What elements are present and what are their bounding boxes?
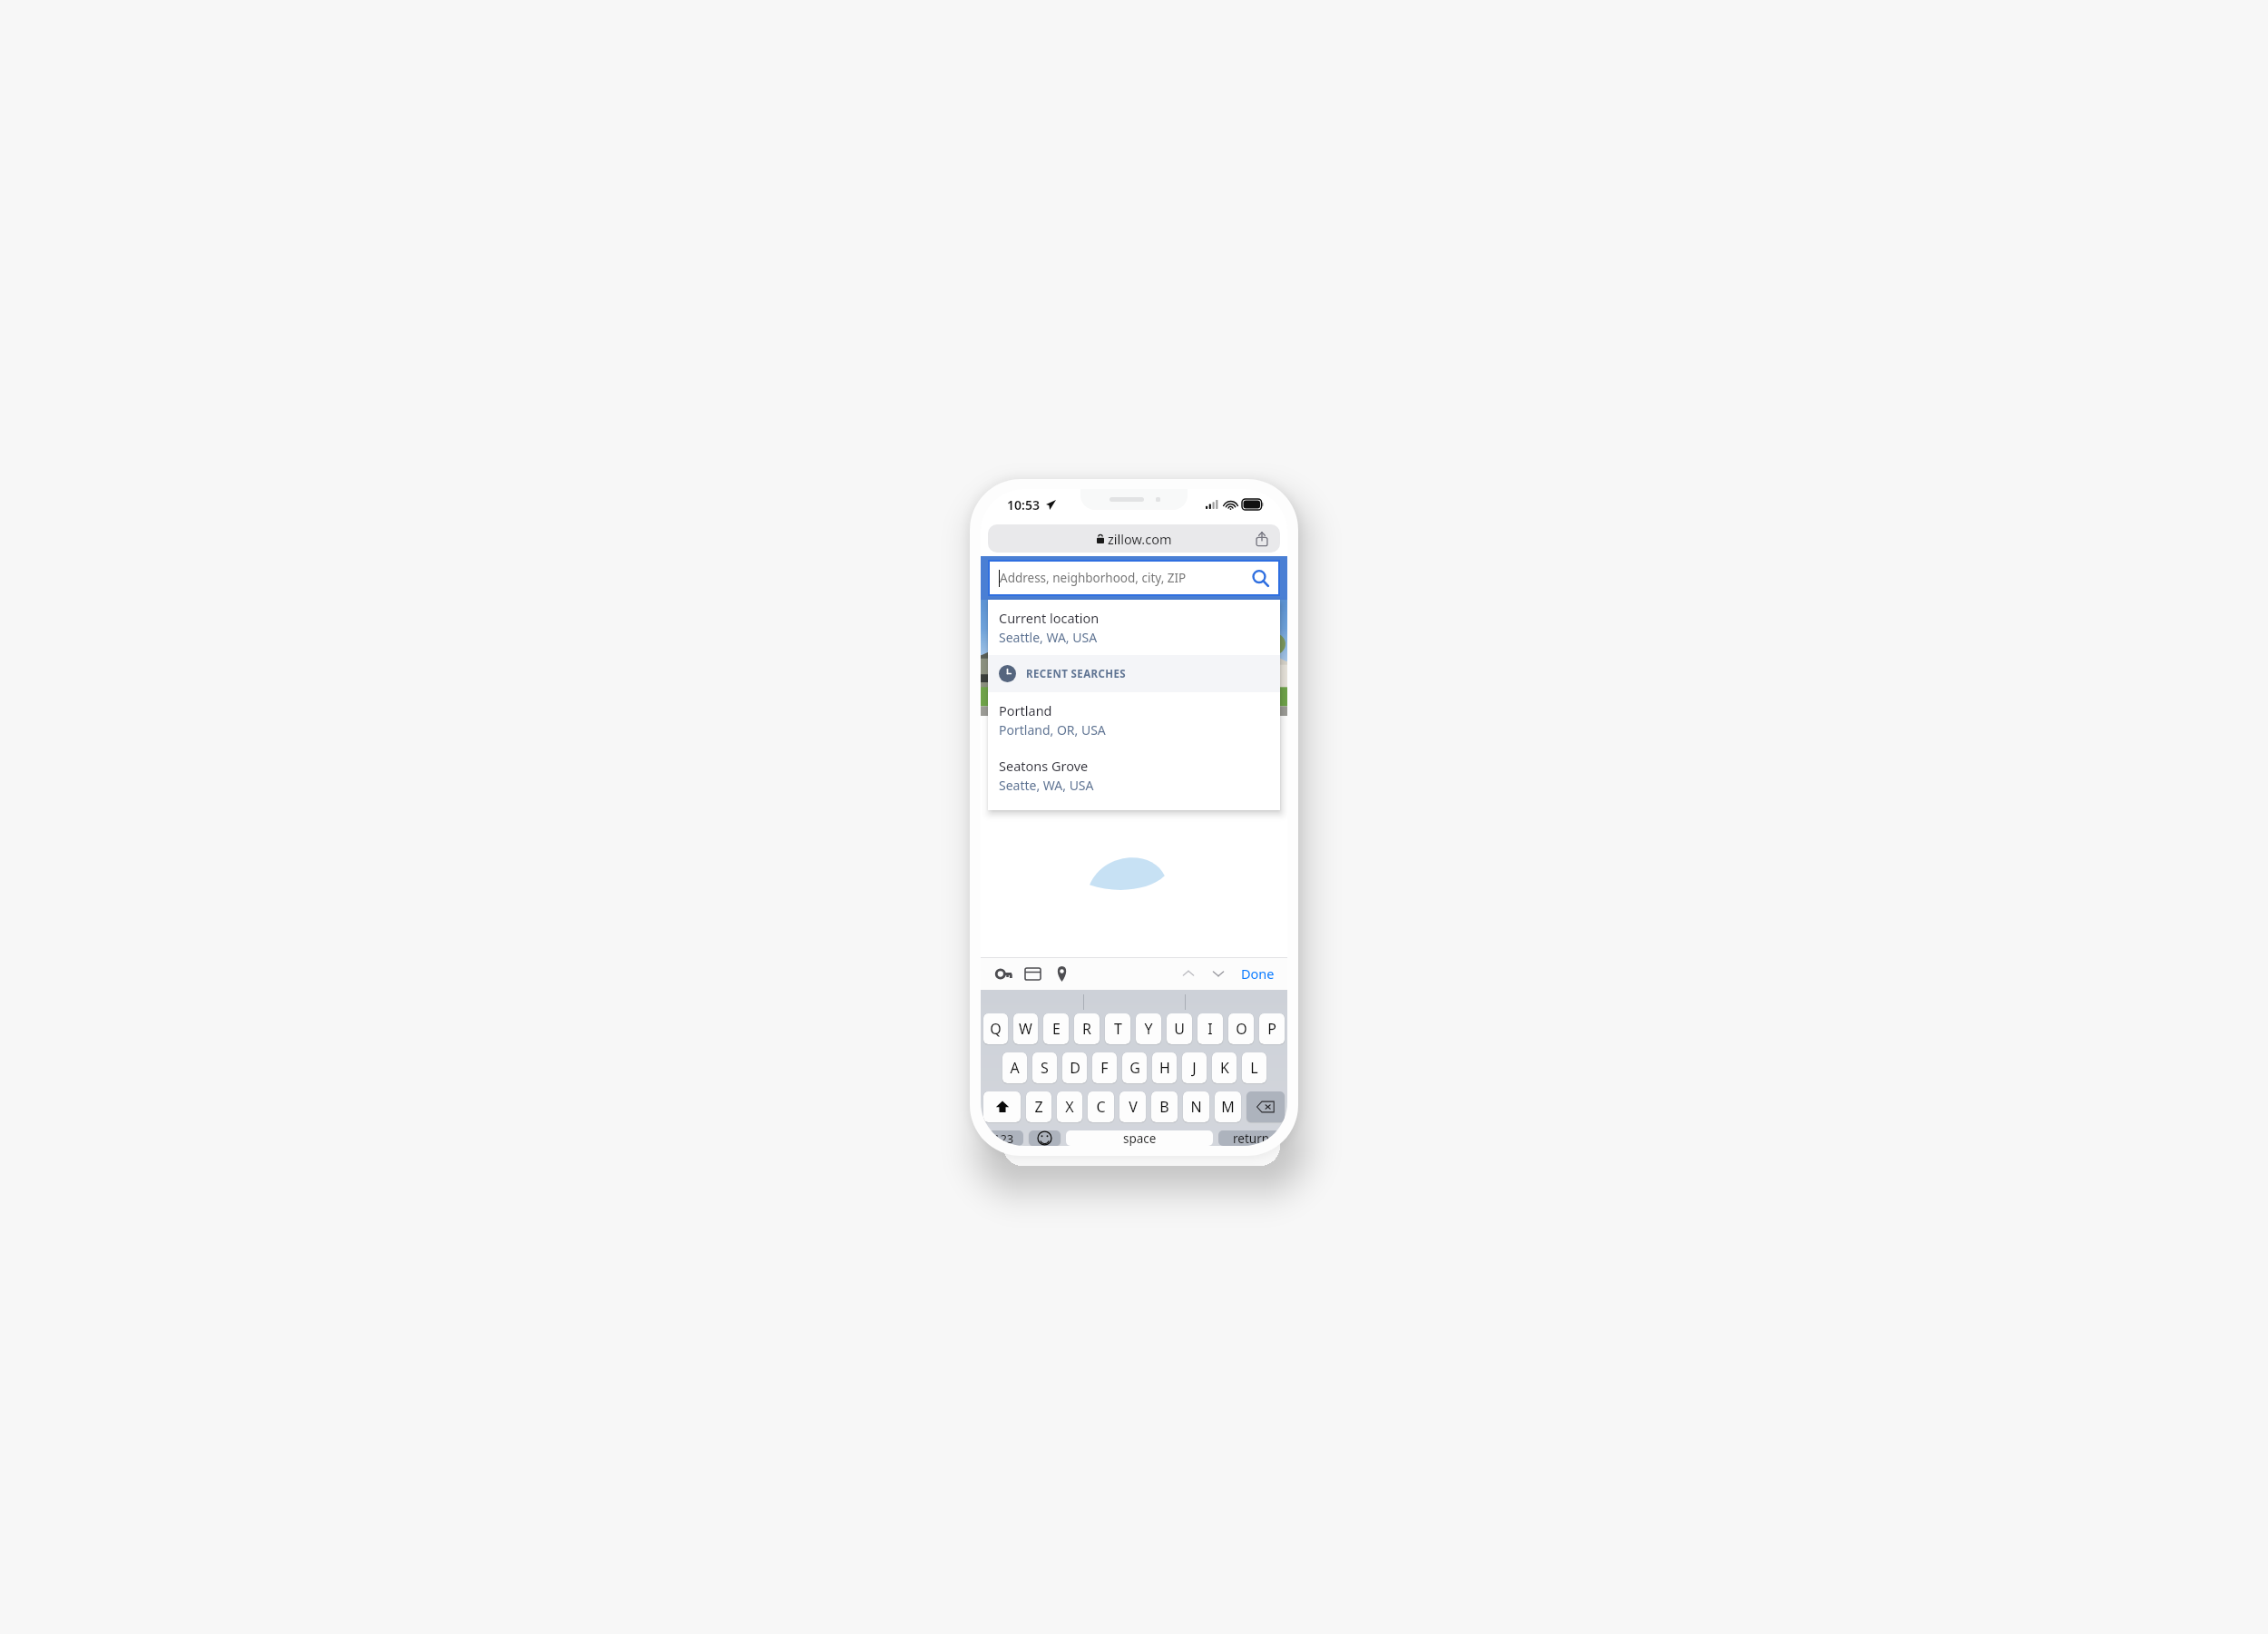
staticText: I — [1207, 1019, 1213, 1039]
staticText: W — [1019, 1019, 1032, 1039]
button[interactable]: A — [1002, 1052, 1027, 1083]
button[interactable]: B — [1151, 1091, 1178, 1122]
staticText: 10:53 — [1007, 496, 1040, 514]
button[interactable]: Key — [1246, 1091, 1285, 1122]
button[interactable]: RECENT SEARCHES — [999, 665, 1280, 682]
button[interactable]: space — [1066, 1130, 1213, 1146]
button[interactable]: M — [1215, 1091, 1241, 1122]
button[interactable]: V — [1119, 1091, 1146, 1122]
staticText: Address, neighborhood, city, ZIP — [1000, 570, 1249, 586]
staticText: W , — [1071, 749, 1197, 775]
button[interactable]: Seatons Grove — [988, 748, 1280, 803]
button[interactable]: 123 — [983, 1130, 1023, 1146]
button[interactable]: Done — [1239, 961, 1276, 986]
button[interactable]: H — [1152, 1052, 1177, 1083]
staticText: C — [1096, 1097, 1106, 1117]
button[interactable]: J — [1182, 1052, 1207, 1083]
button[interactable]: Portland — [988, 692, 1280, 748]
staticText: S — [1041, 1058, 1049, 1078]
button[interactable]: W — [1013, 1013, 1038, 1044]
button[interactable]: Q — [983, 1013, 1008, 1044]
button[interactable]: L — [1242, 1052, 1266, 1083]
button[interactable]: Payment cards — [1021, 962, 1044, 985]
staticText: E — [1052, 1019, 1061, 1039]
staticText: Current location — [999, 609, 1100, 627]
button[interactable]: Address, neighborhood, city, ZIP — [988, 560, 1280, 596]
button[interactable]: X — [1057, 1091, 1082, 1122]
staticText: R — [1082, 1019, 1091, 1039]
staticText: Portland, OR, USA — [999, 721, 1106, 739]
staticText: Z — [1034, 1097, 1043, 1117]
button[interactable]: Y — [1136, 1013, 1161, 1044]
button[interactable]: K — [1212, 1052, 1237, 1083]
button[interactable]: Key — [1029, 1130, 1061, 1146]
staticText: U — [1174, 1019, 1185, 1039]
staticText: 123 — [993, 1130, 1014, 1146]
staticText: V — [1129, 1097, 1138, 1117]
staticText: A — [1010, 1058, 1020, 1078]
button[interactable]: Location — [1050, 962, 1073, 985]
staticText: J — [1192, 1058, 1197, 1078]
button[interactable]: Key — [983, 1091, 1021, 1122]
staticText: L — [1250, 1058, 1258, 1078]
staticText: P — [1267, 1019, 1276, 1039]
staticText: F — [1100, 1058, 1109, 1078]
button[interactable]: C — [1088, 1091, 1114, 1122]
staticText: zillow.com — [1108, 530, 1172, 548]
staticText: G — [1129, 1058, 1140, 1078]
staticText: Seatte, WA, USA — [999, 777, 1094, 794]
staticText: O — [1236, 1019, 1247, 1039]
button[interactable]: I — [1198, 1013, 1223, 1044]
button[interactable]: U — [1167, 1013, 1192, 1044]
button[interactable]: Passwords — [992, 962, 1015, 985]
button[interactable]: F — [1092, 1052, 1117, 1083]
button[interactable]: Z — [1026, 1091, 1051, 1122]
staticText: Seatons Grove — [999, 757, 1089, 775]
staticText: X — [1065, 1097, 1074, 1117]
staticText: return — [1233, 1130, 1270, 1146]
staticText: T — [1114, 1019, 1122, 1039]
button[interactable]: R — [1074, 1013, 1100, 1044]
button[interactable]: Current location — [988, 600, 1280, 655]
button[interactable]: zillow.com — [988, 524, 1280, 553]
button[interactable]: P — [1259, 1013, 1285, 1044]
button[interactable]: Share — [1253, 530, 1271, 548]
staticText: D — [1070, 1058, 1080, 1078]
button[interactable]: D — [1062, 1052, 1087, 1083]
button[interactable]: Next field — [1207, 962, 1230, 985]
staticText: RECENT SEARCHES — [1026, 667, 1127, 681]
button[interactable]: T — [1105, 1013, 1130, 1044]
button[interactable]: Search — [1249, 567, 1271, 589]
staticText: Done — [1241, 964, 1275, 983]
staticText: space — [1123, 1130, 1157, 1146]
button[interactable]: return — [1218, 1130, 1285, 1146]
staticText: B — [1159, 1097, 1169, 1117]
button[interactable]: S — [1032, 1052, 1057, 1083]
button[interactable]: O — [1228, 1013, 1254, 1044]
button[interactable]: N — [1183, 1091, 1209, 1122]
button[interactable]: G — [1122, 1052, 1147, 1083]
button[interactable]: E — [1043, 1013, 1069, 1044]
staticText: Portland — [999, 701, 1052, 719]
staticText: Y — [1144, 1019, 1153, 1039]
staticText: K — [1220, 1058, 1229, 1078]
staticText: Q — [990, 1019, 1002, 1039]
staticText: Seattle, WA, USA — [999, 629, 1098, 646]
staticText: N — [1190, 1097, 1202, 1117]
button[interactable]: Previous field — [1177, 962, 1200, 985]
staticText: M — [1221, 1097, 1235, 1117]
staticText: H — [1159, 1058, 1170, 1078]
